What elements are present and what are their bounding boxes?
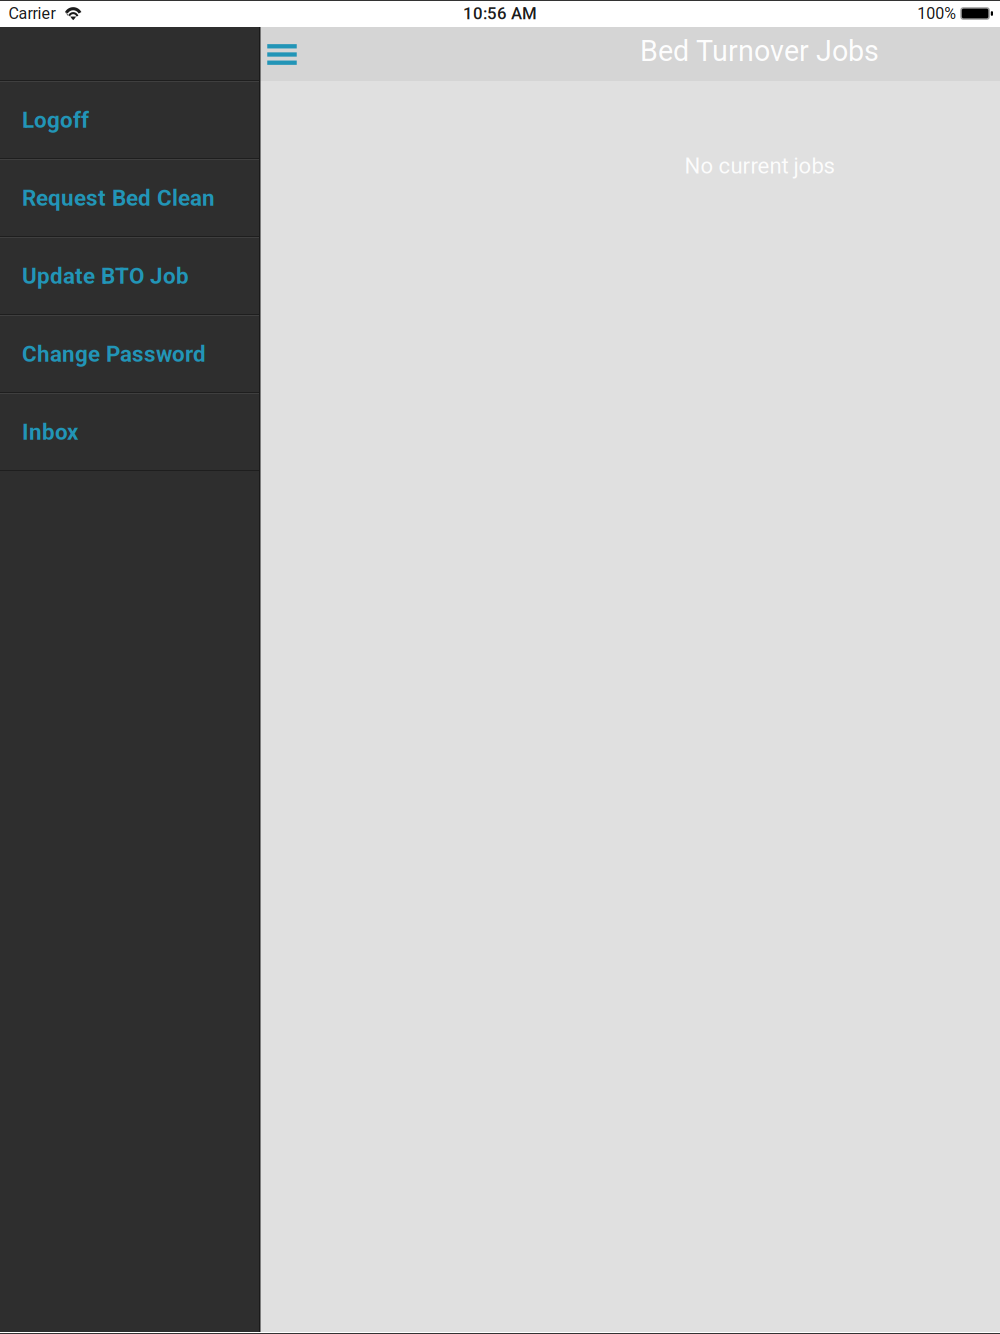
staticText: No current jobs [684, 153, 834, 179]
staticText: Bed Turnover Jobs [640, 34, 879, 68]
button[interactable]: Update BTO Job [0, 238, 259, 314]
button[interactable]: Logoff [0, 82, 259, 158]
staticText: Request Bed Clean [22, 185, 215, 211]
button[interactable]: Menu [259, 27, 305, 81]
button[interactable]: Change Password [0, 316, 259, 392]
staticText: Update BTO Job [22, 263, 189, 289]
staticText: 10:56 AM [463, 4, 537, 23]
staticText: Inbox [22, 419, 78, 445]
staticText: Carrier [8, 4, 55, 23]
staticText: Change Password [22, 341, 206, 367]
button[interactable]: Request Bed Clean [0, 160, 259, 236]
staticText: Logoff [22, 107, 89, 133]
staticText: 100% [917, 4, 956, 23]
button[interactable]: Inbox [0, 394, 259, 470]
